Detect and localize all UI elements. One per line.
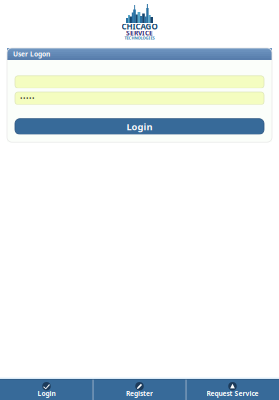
button[interactable]: Login bbox=[0, 379, 93, 400]
staticText: ••••• bbox=[20, 94, 35, 103]
staticText: SERVICE bbox=[126, 28, 153, 38]
button[interactable]: Request Service bbox=[186, 379, 279, 400]
staticText: CHICAGO bbox=[121, 21, 157, 32]
staticText: User Logon bbox=[13, 49, 50, 59]
staticText: Login bbox=[37, 389, 55, 398]
staticText: Request Service bbox=[206, 389, 258, 398]
button[interactable]: Register bbox=[93, 379, 186, 400]
button[interactable]: Login bbox=[15, 119, 264, 134]
staticText: Login bbox=[126, 120, 152, 133]
staticText: Register bbox=[126, 389, 153, 398]
staticText: TECHNOLOGIES bbox=[124, 35, 154, 41]
